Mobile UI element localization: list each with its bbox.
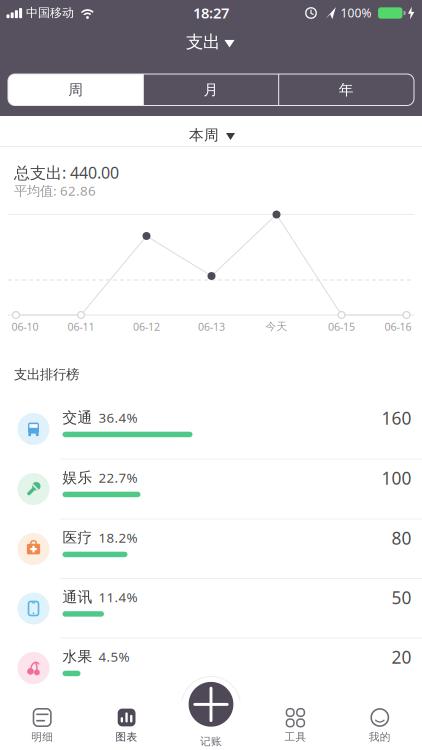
staticText: 20 bbox=[391, 645, 411, 668]
staticText: 记账 bbox=[200, 735, 222, 748]
staticText: 06-11 bbox=[67, 319, 94, 334]
button[interactable]: 本周 bbox=[166, 120, 256, 150]
button[interactable]: 月 bbox=[143, 74, 278, 105]
staticText: 支出 bbox=[186, 31, 220, 53]
staticText: 160 bbox=[381, 406, 411, 429]
staticText: 11.4% bbox=[98, 588, 137, 606]
button[interactable]: 图表 bbox=[85, 690, 169, 750]
staticText: 4.5% bbox=[98, 648, 129, 665]
button[interactable]: 医疗 bbox=[0, 519, 422, 579]
staticText: 100% bbox=[340, 5, 371, 21]
button[interactable]: 交通 bbox=[0, 399, 422, 459]
staticText: 明细 bbox=[31, 730, 53, 743]
button[interactable]: 水果 bbox=[0, 638, 422, 698]
staticText: 06-12 bbox=[133, 319, 160, 334]
staticText: 娱乐 bbox=[62, 468, 92, 486]
staticText: 交通 bbox=[62, 408, 92, 426]
staticText: 06-15 bbox=[328, 319, 355, 334]
staticText: 医疗 bbox=[62, 528, 92, 546]
staticText: 中国移动 bbox=[26, 5, 74, 20]
button[interactable]: 周 bbox=[8, 74, 143, 105]
staticText: 50 bbox=[391, 586, 411, 609]
staticText: 通讯 bbox=[62, 588, 92, 606]
staticText: 06-16 bbox=[384, 319, 411, 334]
staticText: 06-13 bbox=[198, 319, 225, 334]
button[interactable]: 明细 bbox=[0, 690, 84, 750]
staticText: 36.4% bbox=[98, 409, 137, 426]
staticText: 总支出: 440.00 bbox=[14, 162, 119, 183]
button[interactable]: 年 bbox=[279, 74, 414, 105]
staticText: 工具 bbox=[284, 730, 306, 743]
button[interactable]: 通讯 bbox=[0, 578, 422, 638]
staticText: 我的 bbox=[369, 730, 391, 743]
staticText: 80 bbox=[391, 526, 411, 549]
staticText: 水果 bbox=[62, 647, 92, 665]
staticText: 18.2% bbox=[98, 529, 137, 546]
staticText: 22.7% bbox=[98, 469, 137, 486]
staticText: 图表 bbox=[116, 730, 138, 743]
staticText: 年 bbox=[339, 81, 354, 99]
staticText: 本周 bbox=[189, 126, 219, 144]
button[interactable]: 记账 bbox=[169, 678, 253, 750]
button[interactable]: 支出 bbox=[163, 25, 259, 59]
staticText: 周 bbox=[68, 81, 83, 99]
staticText: 支出排行榜 bbox=[14, 366, 79, 383]
staticText: 06-10 bbox=[11, 319, 38, 334]
staticText: 100 bbox=[381, 466, 411, 489]
staticText: 18:27 bbox=[193, 3, 229, 23]
button[interactable]: 娱乐 bbox=[0, 459, 422, 519]
staticText: 今天 bbox=[265, 320, 287, 333]
button[interactable]: 我的 bbox=[338, 690, 422, 750]
staticText: 月 bbox=[203, 81, 218, 99]
button[interactable]: 工具 bbox=[253, 690, 337, 750]
staticText: 平均值: 62.86 bbox=[14, 182, 96, 199]
